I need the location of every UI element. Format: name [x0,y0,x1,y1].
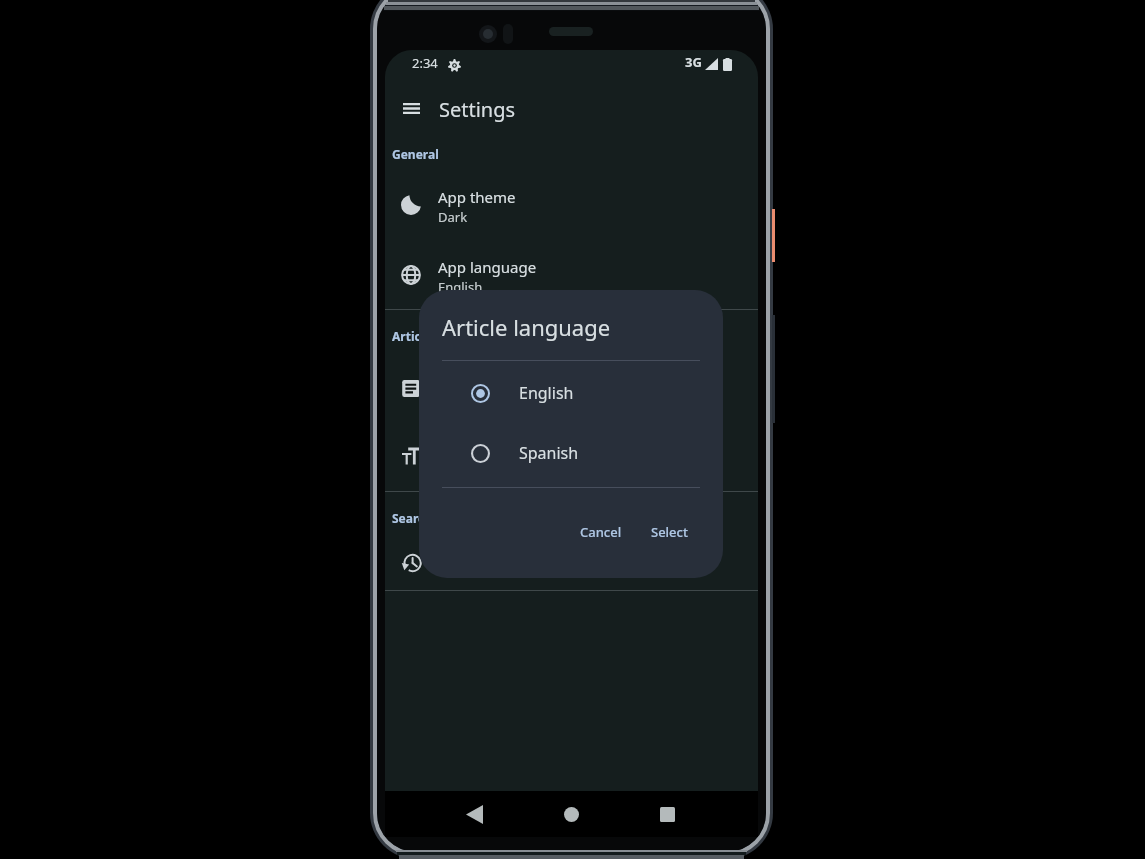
staticText: Font size [438,441,501,461]
staticText: Search [392,510,433,526]
staticText: English [519,382,574,404]
staticText: Spanish [519,442,579,464]
staticText: Article language [442,312,611,342]
button[interactable]: Search history [385,528,758,598]
button[interactable]: Article language [385,353,758,423]
button[interactable]: Home [551,794,591,834]
button[interactable]: Spanish [419,423,723,483]
button[interactable]: Open navigation menu [391,88,431,128]
staticText: Medium [438,462,489,480]
staticText: English [438,391,483,409]
button[interactable]: App language [385,240,758,310]
staticText: Select [651,523,688,541]
staticText: Article [392,328,432,344]
staticText: Cancel [580,523,622,541]
button[interactable]: Select [641,514,698,550]
staticText: App language [438,257,537,277]
button[interactable]: Recent apps [647,794,687,834]
staticText: App theme [438,187,516,207]
staticText: English [438,278,483,296]
button[interactable]: App theme [385,170,758,240]
staticText: Settings [439,96,516,123]
staticText: Dark [438,208,468,226]
staticText: 2:34 [412,54,438,72]
button[interactable]: Font size [385,424,758,494]
staticText: General [392,146,439,162]
staticText: 3G [685,53,702,71]
button[interactable]: English [419,363,723,423]
button[interactable]: Cancel [570,514,632,550]
button[interactable]: Back [454,794,494,834]
staticText: Article language [438,370,553,390]
